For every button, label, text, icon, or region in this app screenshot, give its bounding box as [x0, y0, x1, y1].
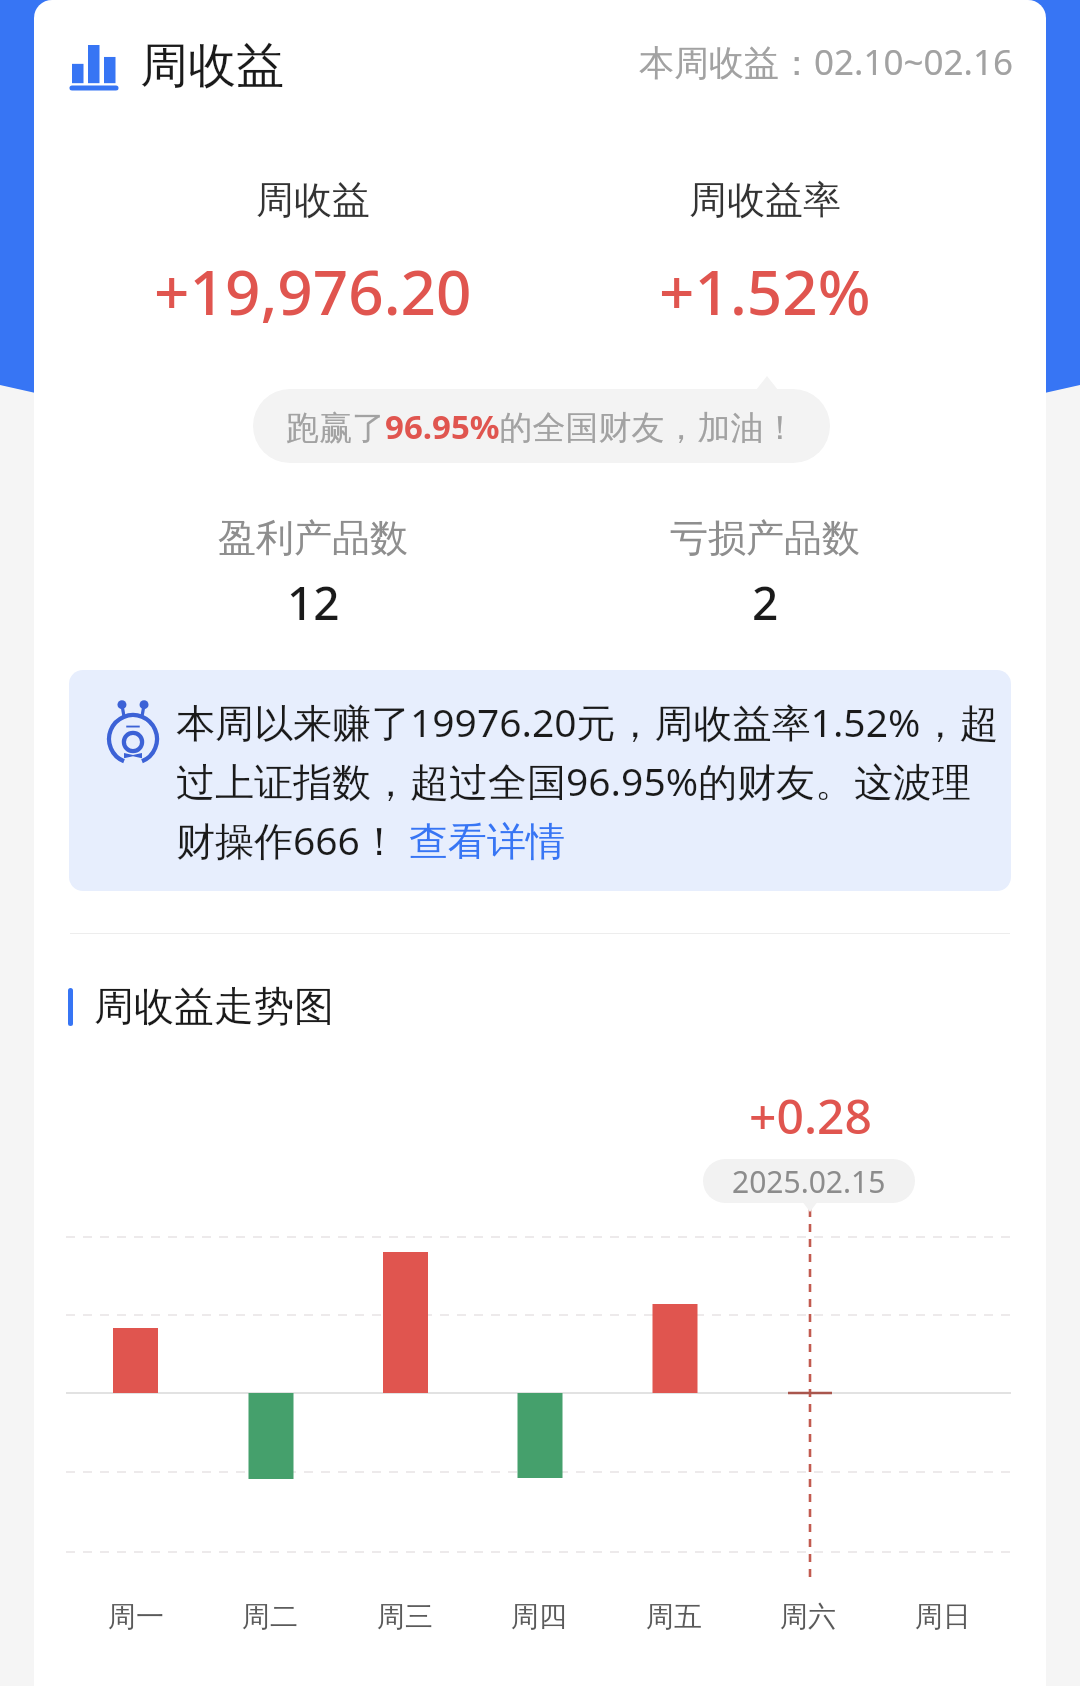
button[interactable]: 盈利产品数: [113, 498, 513, 650]
other: AI 助手: [108, 700, 158, 762]
button[interactable]: 周收益统计: [54, 22, 299, 110]
button[interactable]: 亏损产品数: [565, 498, 965, 650]
staticText: 盈利产品数: [218, 514, 408, 562]
staticText: 周四: [511, 1599, 567, 1634]
staticText: 周日: [915, 1599, 971, 1634]
staticText: 亏损产品数: [670, 514, 860, 562]
staticText: 本周收益：02.10~02.16: [639, 38, 1013, 86]
staticText: +0.28: [749, 1083, 872, 1148]
staticText: 周二: [242, 1599, 298, 1634]
staticText: 周五: [646, 1599, 702, 1634]
staticText: 跑赢了96.95%的全国财友，加油！: [286, 404, 797, 449]
button[interactable]: 周收益走势图: [48, 962, 354, 1052]
staticText: 12: [287, 571, 340, 634]
button[interactable]: 周收益: [113, 160, 513, 349]
staticText: 周六: [780, 1599, 836, 1634]
staticText: 周收益率: [689, 176, 841, 224]
staticText: 周收益: [140, 36, 284, 96]
staticText: 周收益: [256, 176, 370, 224]
staticText: 周一: [108, 1599, 164, 1634]
staticText: 本周以来赚了19976.20元，周收益率1.52%，超过上证指数，超过全国96.…: [176, 695, 1001, 866]
staticText: +1.52%: [659, 249, 871, 333]
staticText: +19,976.20: [154, 249, 472, 333]
other: 周收益统计: [69, 45, 118, 91]
staticText: 2025.02.15: [732, 1161, 886, 1202]
staticText: 2: [752, 571, 779, 634]
staticText: 周三: [377, 1599, 433, 1634]
button[interactable]: 周收益率: [565, 160, 965, 349]
staticText: 周收益走势图: [94, 981, 334, 1031]
button[interactable]: AI 助手: [69, 670, 1011, 891]
